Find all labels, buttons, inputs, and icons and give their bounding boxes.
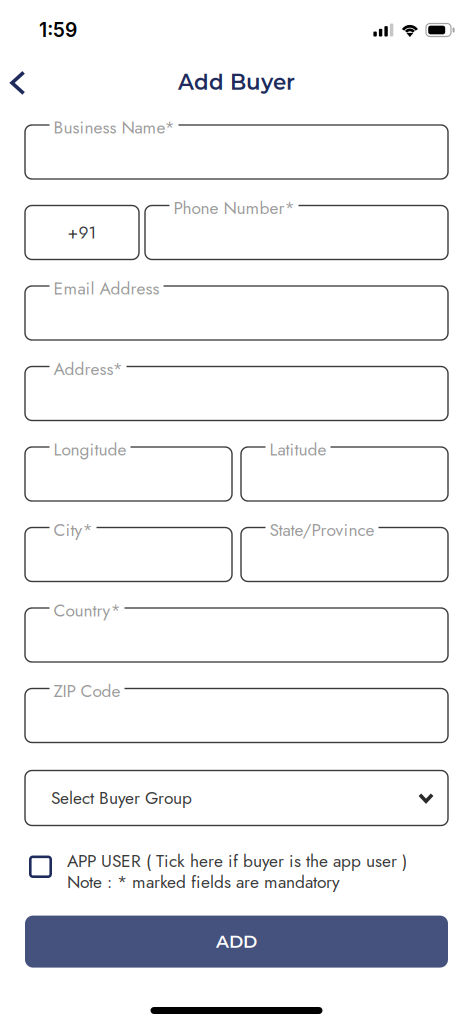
staticText: Phone Number* xyxy=(173,195,294,220)
staticText: APP USER ( Tick here if buyer is the app… xyxy=(67,848,407,873)
staticText: Email Address xyxy=(53,276,159,301)
button[interactable]: Country* xyxy=(25,608,448,662)
staticText: Add Buyer xyxy=(178,69,295,95)
button[interactable]: ADD xyxy=(25,916,448,968)
staticText: Country* xyxy=(53,598,120,623)
staticText: Note : * marked fields are mandatory xyxy=(67,869,340,894)
button[interactable]: ZIP Code xyxy=(25,688,448,742)
button[interactable]: APP USER ( Tick here if buyer is the app… xyxy=(25,848,448,895)
button[interactable]: Address* xyxy=(25,366,448,420)
button[interactable]: Back xyxy=(0,53,54,97)
button[interactable]: Phone Number* xyxy=(145,205,448,259)
staticText: +91 xyxy=(67,220,96,245)
staticText: ZIP Code xyxy=(53,678,120,703)
staticText: Select Buyer Group xyxy=(51,785,192,810)
button[interactable]: Business Name* xyxy=(25,125,448,179)
button[interactable]: City* xyxy=(25,527,232,581)
button[interactable]: State/Province xyxy=(241,527,448,581)
staticText: 1:59 xyxy=(39,18,77,42)
staticText: ADD xyxy=(216,931,257,952)
staticText: Latitude xyxy=(269,437,326,462)
staticText: Business Name* xyxy=(53,115,174,140)
staticText: Longitude xyxy=(53,437,126,462)
button[interactable]: Select Buyer Group xyxy=(25,770,448,825)
staticText: State/Province xyxy=(269,517,374,542)
staticText: City* xyxy=(53,517,92,542)
button[interactable]: +91 xyxy=(25,205,139,259)
button[interactable]: Latitude xyxy=(241,447,448,501)
button[interactable]: Longitude xyxy=(25,447,232,501)
button[interactable]: Email Address xyxy=(25,286,448,340)
staticText: Address* xyxy=(53,356,122,381)
